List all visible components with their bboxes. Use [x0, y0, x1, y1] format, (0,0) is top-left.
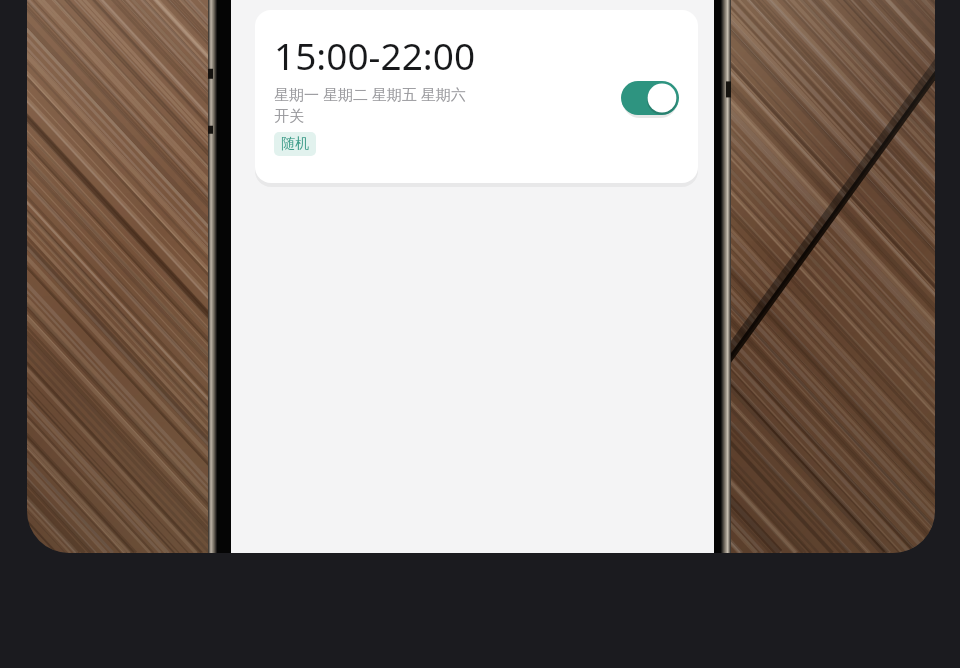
button[interactable]: 15:00-22:00	[255, 10, 698, 183]
staticText: 星期一 星期二 星期五 星期六 开关	[274, 84, 479, 125]
button[interactable]: 随机	[274, 132, 316, 156]
staticText: 15:00-22:00	[274, 30, 476, 80]
button[interactable]: Toggle alarm on or off	[621, 81, 679, 115]
staticText: 随机	[281, 135, 309, 153]
